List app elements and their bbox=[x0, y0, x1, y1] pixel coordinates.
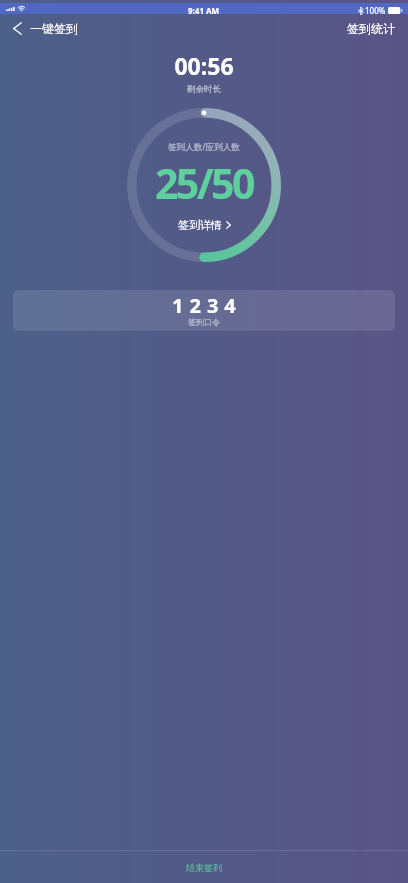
button[interactable]: Back bbox=[0, 16, 85, 41]
staticText: 25/50 bbox=[155, 155, 253, 211]
staticText: 签到口令 bbox=[188, 317, 220, 327]
staticText: 签到详情 bbox=[178, 218, 222, 232]
staticText: 00:56 bbox=[174, 50, 234, 81]
staticText: 签到统计 bbox=[347, 21, 395, 36]
staticText: 签到人数/应到人数 bbox=[168, 141, 240, 153]
button[interactable]: 签到统计 bbox=[334, 15, 408, 42]
staticText: 剩余时长 bbox=[187, 84, 221, 95]
staticText: 9:41 AM bbox=[188, 5, 220, 16]
button[interactable]: 签到详情 bbox=[172, 215, 237, 235]
staticText: 一键签到 bbox=[30, 21, 78, 36]
staticText: 结束签到 bbox=[186, 862, 222, 873]
staticText: 1 2 3 4 bbox=[172, 292, 237, 319]
staticText: 100% bbox=[365, 5, 386, 16]
button[interactable]: 1 2 3 4 bbox=[13, 290, 395, 331]
button[interactable]: 结束签到 bbox=[0, 851, 408, 883]
